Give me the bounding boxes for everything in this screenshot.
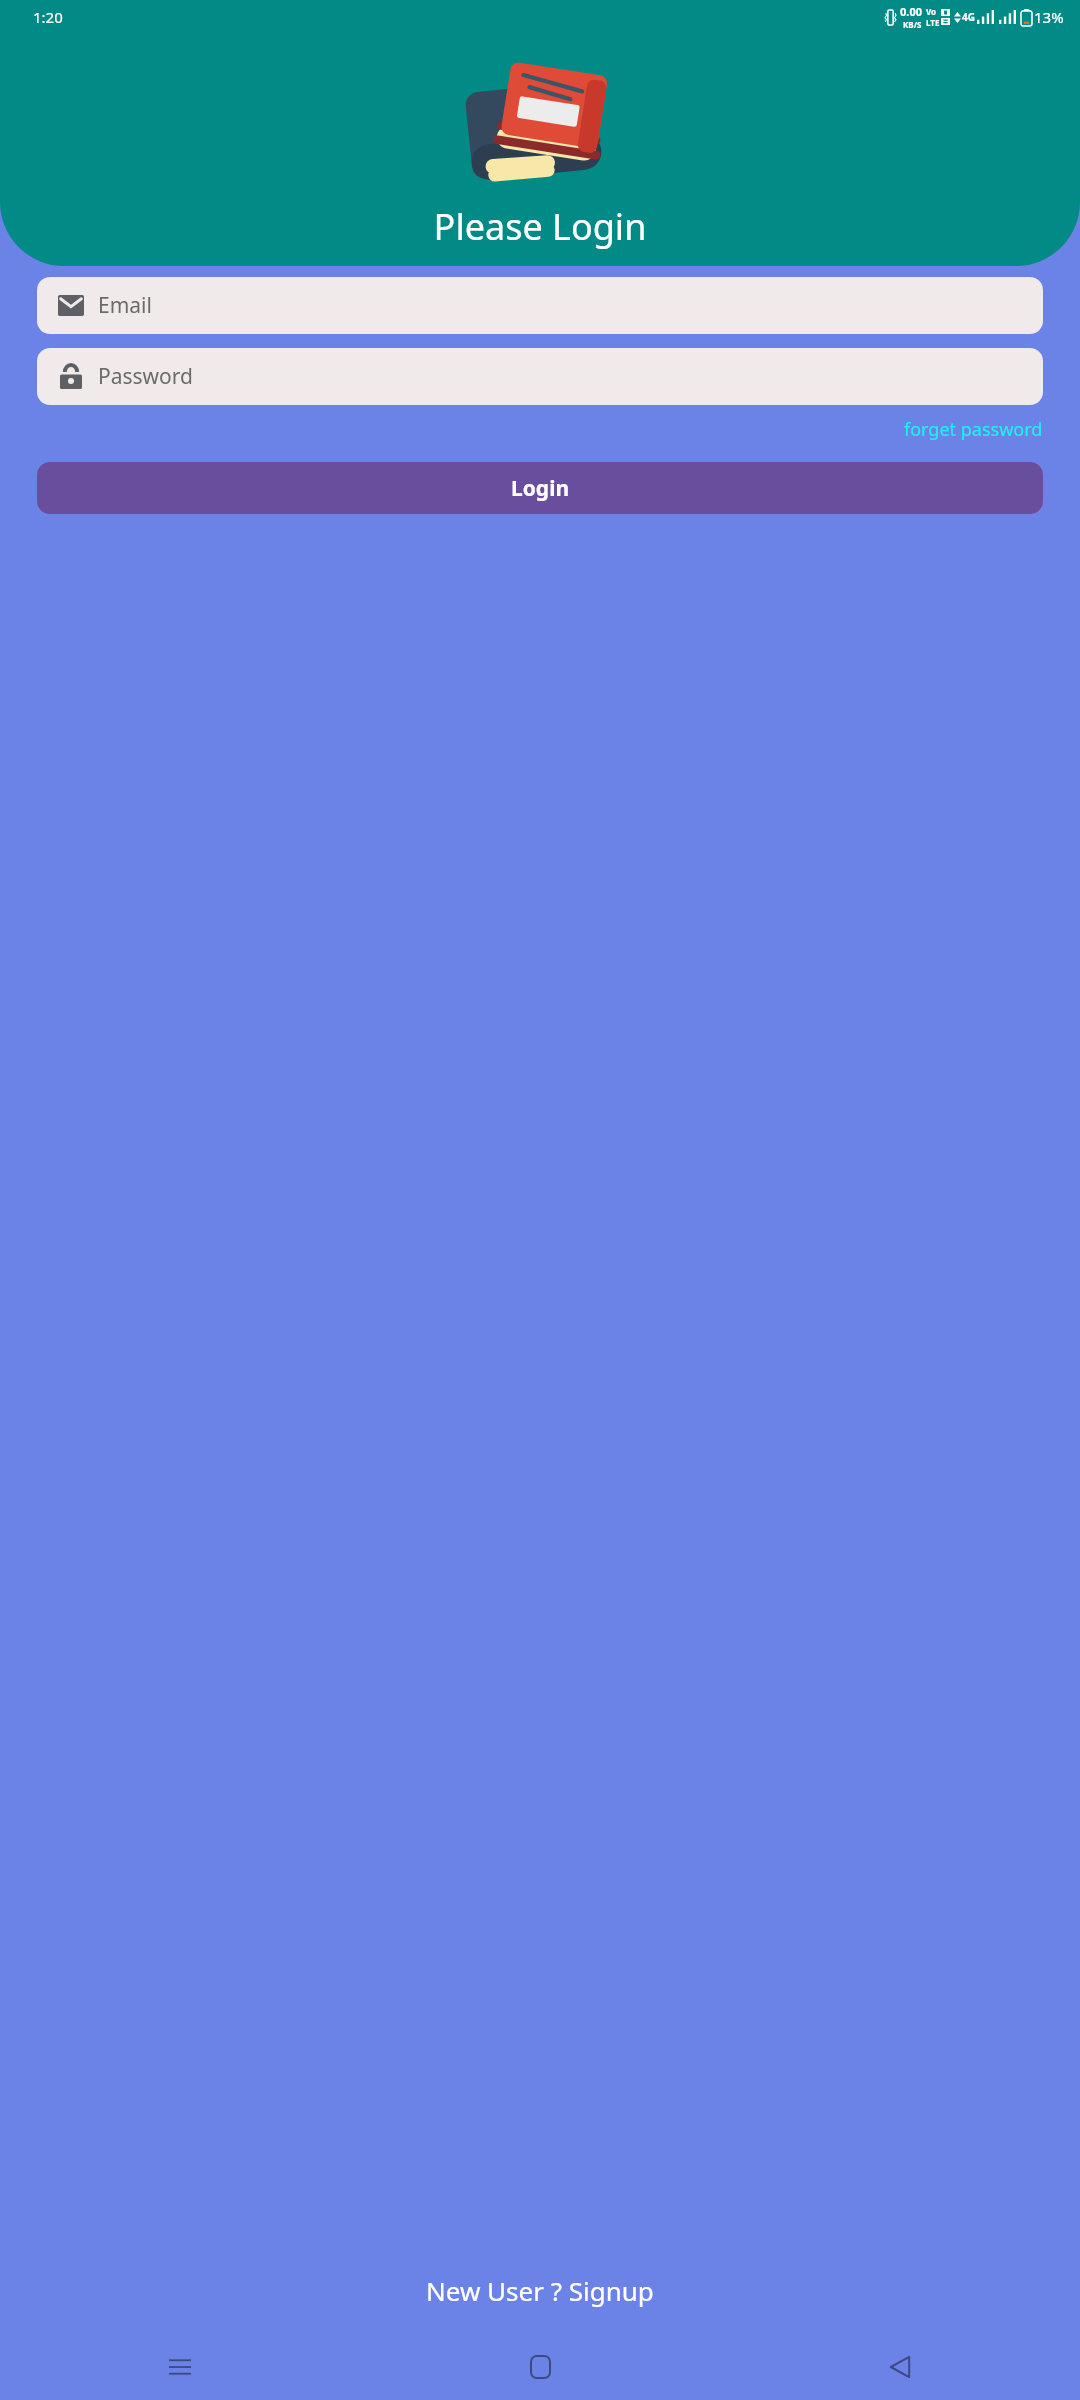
staticText: KB/S <box>903 19 922 30</box>
button[interactable]: forget password <box>894 411 1080 448</box>
button[interactable]: Home <box>360 2340 720 2394</box>
staticText: Login <box>511 474 570 503</box>
button[interactable]: Password <box>37 348 1043 405</box>
staticText: 4G <box>962 10 975 24</box>
staticText: 0.00 <box>900 4 922 19</box>
staticText: Vo <box>926 6 937 17</box>
button[interactable]: Recent apps <box>0 2340 360 2394</box>
button[interactable]: Back <box>720 2340 1080 2394</box>
staticText: Email <box>98 291 152 320</box>
staticText: Please Login <box>0 202 1080 251</box>
button[interactable]: Login <box>37 462 1043 514</box>
staticText: Password <box>98 362 193 391</box>
button[interactable]: Email <box>37 277 1043 334</box>
staticText: 13% <box>1034 7 1064 27</box>
staticText: LTE <box>926 17 940 28</box>
staticText: 1:20 <box>33 7 63 27</box>
button[interactable]: New User ? Signup <box>414 2267 666 2314</box>
